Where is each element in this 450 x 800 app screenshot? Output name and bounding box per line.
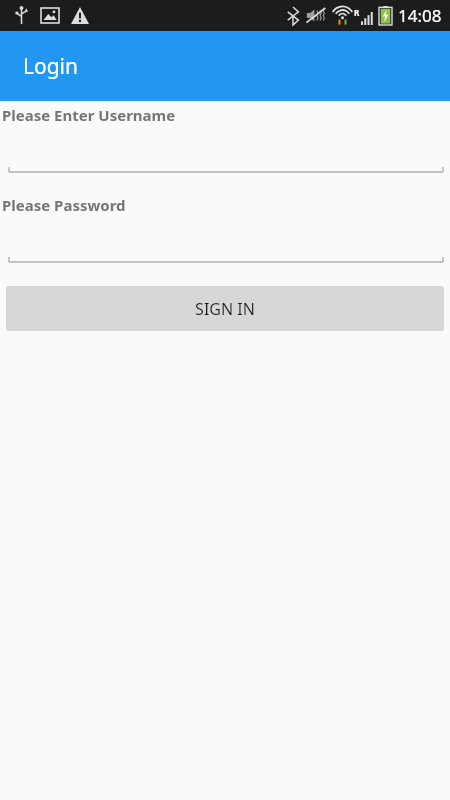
staticText: 14:08 [398,4,442,27]
button[interactable]: SIGN IN [6,286,444,331]
staticText: SIGN IN [195,298,255,320]
staticText: Login [23,52,79,81]
button[interactable] [0,166,450,174]
button[interactable] [0,256,450,264]
staticText: Please Password [2,195,126,215]
staticText: R [354,7,360,18]
staticText: Please Enter Username [2,105,176,125]
